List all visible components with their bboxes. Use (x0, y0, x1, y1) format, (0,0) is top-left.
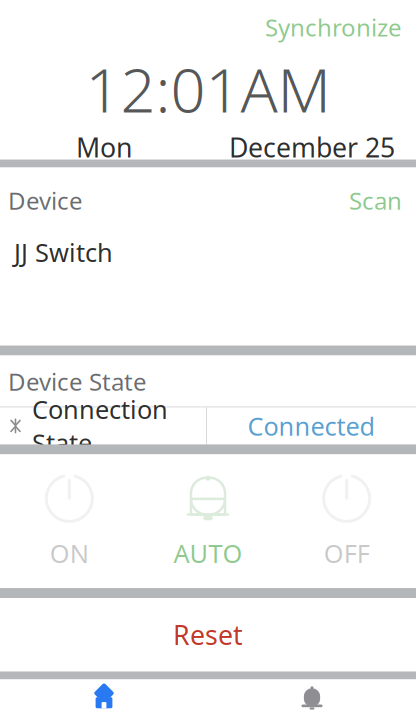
staticText: Scan (349, 184, 402, 216)
staticText: Connected (247, 409, 375, 443)
button[interactable]: Schedule (208, 679, 416, 710)
button[interactable]: ON (0, 464, 139, 578)
staticText: Device (8, 184, 83, 216)
button[interactable]: AUTO (139, 464, 277, 578)
button[interactable]: Reset (0, 598, 416, 671)
staticText: Mon (76, 129, 132, 165)
staticText: AUTO (173, 536, 242, 570)
staticText: Reset (173, 617, 243, 652)
button[interactable]: OFF (277, 464, 416, 578)
staticText: JJ Switch (14, 235, 113, 269)
staticText: 12:01AM (85, 48, 330, 129)
staticText: Synchronize (265, 11, 402, 43)
staticText: December 25 (229, 129, 395, 165)
button[interactable]: Home (0, 678, 208, 710)
staticText: ON (50, 536, 89, 570)
button[interactable]: Synchronize (259, 8, 408, 46)
staticText: OFF (324, 536, 370, 570)
button[interactable]: JJ Switch (0, 219, 416, 269)
staticText: Connection State (32, 392, 168, 460)
button[interactable]: Scan (343, 181, 408, 219)
staticText: Device State (8, 365, 147, 397)
